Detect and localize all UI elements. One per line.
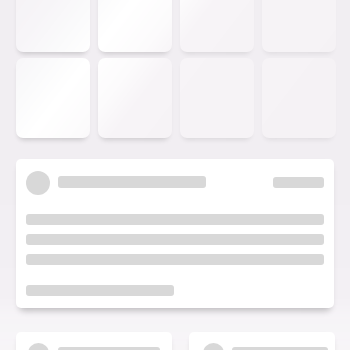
- button[interactable]: Loading item: [189, 332, 335, 350]
- button[interactable]: Loading item: [16, 332, 172, 350]
- button[interactable]: Loading tile: [98, 58, 172, 138]
- button[interactable]: Loading tile: [16, 0, 90, 52]
- button[interactable]: Loading article: [16, 159, 334, 308]
